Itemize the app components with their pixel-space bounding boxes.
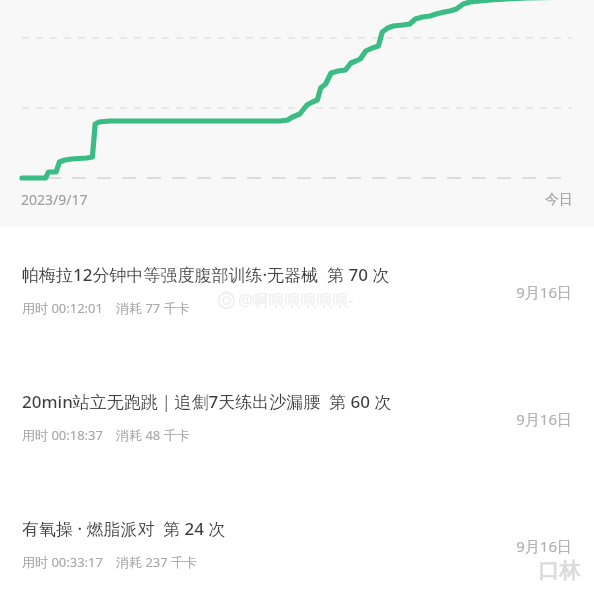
staticText: 第 60 次 [329, 390, 392, 413]
staticText: 用时 00:33:17 [22, 553, 103, 571]
staticText: 第 24 次 [163, 517, 226, 540]
staticText: 9月16日 [516, 536, 572, 556]
staticText: 有氧操 · 燃脂派对 [22, 517, 155, 540]
staticText: 消耗 77 千卡 [116, 299, 190, 317]
staticText: 用时 00:18:37 [22, 426, 103, 444]
button[interactable]: 有氧操 · 燃脂派对 [0, 479, 594, 594]
staticText: 口林 [538, 558, 580, 584]
staticText: @啊喂喂喂喂喂- [238, 289, 354, 311]
staticText: 9月16日 [516, 282, 572, 302]
staticText: 用时 00:12:01 [22, 299, 103, 317]
staticText: 消耗 48 千卡 [116, 426, 190, 444]
button[interactable]: 20min站立无跑跳｜追劁7天练出沙漏腰 [0, 352, 594, 479]
staticText: 消耗 237 千卡 [116, 553, 198, 571]
staticText: 今日 [545, 191, 573, 209]
staticText: 帕梅拉12分钟中等强度腹部训练·无器械 [22, 263, 319, 286]
staticText: 第 70 次 [327, 263, 390, 286]
staticText: 2023/9/17 [21, 190, 88, 209]
staticText: 20min站立无跑跳｜追劁7天练出沙漏腰 [22, 390, 321, 413]
button[interactable]: 帕梅拉12分钟中等强度腹部训练·无器械 [0, 227, 594, 352]
staticText: 9月16日 [516, 409, 572, 429]
